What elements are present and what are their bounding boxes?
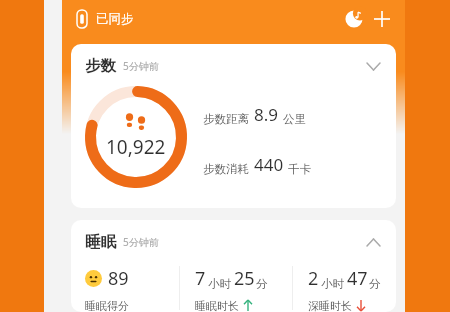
- staticText: 2: [308, 266, 319, 291]
- staticText: 睡眠: [85, 232, 116, 252]
- staticText: 8.9: [254, 103, 279, 126]
- button[interactable]: Sleep music: [340, 5, 368, 33]
- staticText: 分: [369, 277, 381, 291]
- other: Collapse: [361, 230, 385, 254]
- staticText: 7: [195, 266, 206, 291]
- staticText: 深睡时长: [308, 299, 352, 312]
- staticText: 小时: [321, 277, 344, 291]
- staticText: 5分钟前: [123, 59, 159, 73]
- staticText: 步数消耗: [203, 162, 249, 176]
- staticText: 步数: [85, 56, 116, 76]
- button[interactable]: Add: [368, 5, 396, 33]
- staticText: 小时: [208, 277, 231, 291]
- button[interactable]: 睡眠: [85, 226, 385, 258]
- staticText: 步数距离: [203, 112, 249, 126]
- staticText: 睡眠得分: [85, 299, 129, 312]
- button[interactable]: 步数: [85, 50, 385, 82]
- button[interactable]: Device: [69, 6, 95, 32]
- button[interactable]: 睡眠: [71, 220, 396, 312]
- button[interactable]: 步数: [71, 44, 396, 208]
- staticText: 分: [256, 277, 268, 291]
- staticText: 47: [347, 266, 368, 291]
- staticText: 公里: [283, 112, 306, 126]
- staticText: 25: [234, 266, 255, 291]
- staticText: 89: [108, 266, 129, 291]
- staticText: 睡眠时长: [195, 299, 239, 312]
- staticText: 10,922: [106, 134, 166, 160]
- staticText: 千卡: [288, 162, 311, 176]
- staticText: 440: [254, 153, 284, 176]
- other: Expand: [361, 54, 385, 78]
- staticText: 5分钟前: [123, 235, 159, 249]
- staticText: 已同步: [96, 11, 134, 27]
